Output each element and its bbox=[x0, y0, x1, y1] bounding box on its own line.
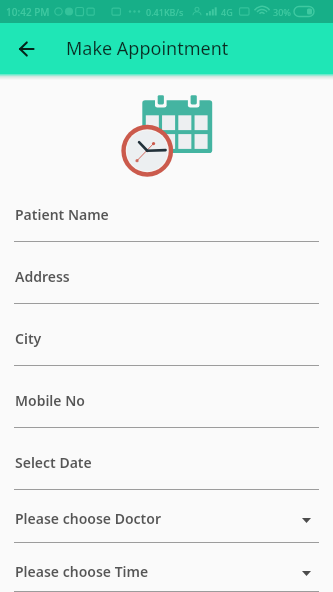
button[interactable]: Please choose Time bbox=[0, 543, 333, 592]
button[interactable]: Please choose Doctor bbox=[0, 490, 333, 543]
button[interactable]: Select Date bbox=[0, 428, 333, 490]
button[interactable]: City bbox=[0, 304, 333, 366]
button[interactable]: Mobile No bbox=[0, 366, 333, 428]
button[interactable]: Address bbox=[0, 242, 333, 304]
staticText: Address bbox=[15, 267, 70, 286]
staticText: Make Appointment bbox=[66, 36, 229, 61]
button[interactable]: Patient Name bbox=[0, 180, 333, 242]
staticText: Patient Name bbox=[15, 205, 109, 224]
staticText: 0.41KB/s bbox=[146, 6, 184, 18]
staticText: Select Date bbox=[15, 453, 92, 472]
staticText: 30% bbox=[273, 6, 291, 18]
staticText: Please choose Doctor bbox=[15, 509, 161, 528]
staticText: City bbox=[15, 329, 42, 348]
staticText: Please choose Time bbox=[15, 562, 149, 581]
staticText: 4G bbox=[221, 6, 233, 18]
button[interactable]: Back bbox=[10, 33, 42, 65]
staticText: Mobile No bbox=[15, 391, 85, 410]
staticText: 10:42 PM bbox=[6, 5, 50, 19]
